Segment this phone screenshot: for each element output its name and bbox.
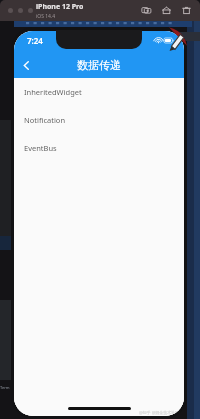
button[interactable]: Screenshot xyxy=(141,5,152,16)
staticText: Term xyxy=(0,385,14,390)
staticText: 7:24 xyxy=(27,35,43,46)
staticText: @知乎 @掘金技术社区 xyxy=(139,410,180,415)
staticText: iOS 14.4 xyxy=(36,13,56,20)
staticText: EventBus xyxy=(24,143,57,153)
button[interactable]: Home xyxy=(161,5,172,16)
staticText: InheritedWidget xyxy=(24,87,82,97)
button[interactable] xyxy=(8,8,13,13)
staticText: Notification xyxy=(24,115,66,125)
button[interactable] xyxy=(18,8,23,13)
staticText: 数据传递 xyxy=(77,58,121,72)
button[interactable]: Back xyxy=(14,53,38,77)
staticText: iPhone 12 Pro xyxy=(36,2,84,12)
button[interactable]: Notification xyxy=(14,106,184,134)
button[interactable]: Rotate xyxy=(181,5,192,16)
button[interactable]: InheritedWidget xyxy=(14,78,184,106)
button[interactable] xyxy=(28,8,33,13)
button[interactable]: EventBus xyxy=(14,134,184,162)
